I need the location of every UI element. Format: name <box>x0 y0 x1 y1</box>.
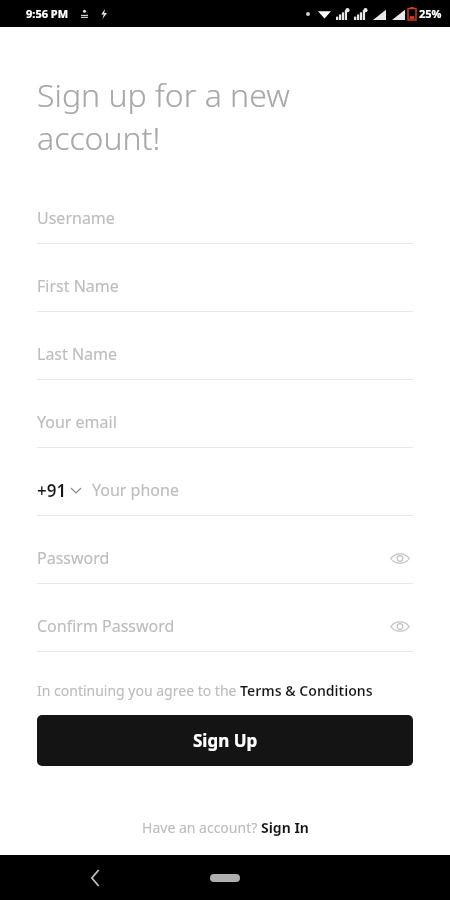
staticText: +91 <box>37 479 67 502</box>
button[interactable]: In continuing you agree to the Terms & C… <box>37 681 413 700</box>
button[interactable]: First Name <box>37 261 413 329</box>
button[interactable]: Home <box>195 866 255 890</box>
staticText: First Name <box>37 275 119 297</box>
button[interactable]: Confirm Password <box>37 601 413 669</box>
staticText: 9:56 PM <box>26 6 69 21</box>
staticText: Password <box>37 547 110 569</box>
staticText: Username <box>37 207 115 229</box>
button[interactable]: Username <box>37 193 413 261</box>
button[interactable]: Show password <box>387 613 413 639</box>
button[interactable]: Last Name <box>37 329 413 397</box>
staticText: Confirm Password <box>37 615 175 637</box>
button[interactable]: Back <box>78 861 112 895</box>
staticText: Sign Up <box>193 729 258 752</box>
button[interactable]: Show password <box>387 545 413 571</box>
staticText: Sign up for a new account! <box>37 73 290 159</box>
staticText: Last Name <box>37 343 118 365</box>
staticText: Have an account? Sign In <box>142 818 309 837</box>
staticText: Your phone <box>92 479 179 501</box>
button[interactable]: Password <box>37 533 413 601</box>
staticText: In continuing you agree to the Terms & C… <box>37 681 373 700</box>
button[interactable]: Sign Up <box>37 715 413 766</box>
button[interactable]: Have an account? Sign In <box>130 814 321 841</box>
staticText: 25% <box>419 6 442 21</box>
button[interactable]: Your email <box>37 397 413 465</box>
staticText: Your email <box>37 411 117 433</box>
button[interactable]: +91 <box>37 479 83 502</box>
